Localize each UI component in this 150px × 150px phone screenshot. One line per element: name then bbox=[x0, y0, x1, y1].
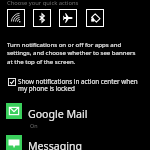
button[interactable]: Wi-Fi bbox=[7, 9, 25, 27]
staticText: Show notifications in action center when… bbox=[18, 77, 141, 92]
button[interactable]: Rotation lock bbox=[86, 9, 104, 27]
button[interactable]: Airplane mode bbox=[59, 9, 77, 27]
button[interactable]: Bluetooth bbox=[33, 9, 51, 27]
staticText: Google Mail bbox=[28, 107, 88, 121]
staticText: Choose your quick actions bbox=[7, 0, 79, 7]
button[interactable]: Messaging bbox=[0, 132, 150, 150]
staticText: Messaging bbox=[28, 139, 82, 150]
button[interactable]: Show notifications in action center when… bbox=[2, 74, 148, 91]
button[interactable]: Google Mail bbox=[0, 100, 150, 129]
staticText: On bbox=[30, 122, 38, 129]
staticText: Turn notifications on or off for apps an… bbox=[7, 40, 139, 66]
